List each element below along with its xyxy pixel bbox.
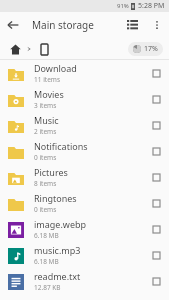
- button[interactable]: readme.txt: [0, 268, 169, 294]
- staticText: music.mp3: [34, 244, 81, 256]
- staticText: Ringtones: [34, 192, 77, 204]
- staticText: 2 items: [34, 127, 57, 136]
- staticText: 5:28 PM: [138, 1, 165, 11]
- button[interactable]: Pictures: [0, 164, 169, 190]
- button[interactable]: Back: [0, 12, 26, 38]
- button[interactable]: Select Music: [143, 112, 169, 138]
- staticText: Download: [34, 62, 77, 74]
- staticText: image.webp: [34, 218, 87, 230]
- button[interactable]: Home: [6, 40, 24, 58]
- staticText: 3 items: [34, 101, 57, 110]
- staticText: Main storage: [32, 18, 94, 32]
- button[interactable]: Select readme.txt: [143, 268, 169, 294]
- button[interactable]: music.mp3: [0, 242, 169, 268]
- button[interactable]: Notifications: [0, 138, 169, 164]
- staticText: 0 items: [34, 153, 57, 162]
- button[interactable]: Download: [0, 60, 169, 86]
- button[interactable]: Select music.mp3: [143, 242, 169, 268]
- button[interactable]: Main storage: [35, 40, 53, 58]
- staticText: Pictures: [34, 166, 68, 178]
- button[interactable]: Select image.webp: [143, 216, 169, 242]
- staticText: 0 items: [34, 205, 57, 214]
- button[interactable]: Select Ringtones: [143, 190, 169, 216]
- button[interactable]: image.webp: [0, 216, 169, 242]
- staticText: Music: [34, 114, 59, 126]
- button[interactable]: 17%: [128, 42, 163, 56]
- staticText: 12.87 KB: [34, 283, 61, 292]
- button[interactable]: Select Download: [143, 60, 169, 86]
- button[interactable]: More options: [145, 13, 169, 37]
- staticText: 17%: [144, 44, 158, 54]
- button[interactable]: Music: [0, 112, 169, 138]
- staticText: readme.txt: [34, 270, 81, 282]
- button[interactable]: Select Notifications: [143, 138, 169, 164]
- staticText: 8 items: [34, 179, 57, 188]
- staticText: 6.18 MB: [34, 257, 59, 266]
- staticText: Notifications: [34, 140, 88, 152]
- staticText: 91%: [117, 2, 129, 10]
- button[interactable]: Ringtones: [0, 190, 169, 216]
- button[interactable]: Select Movies: [143, 86, 169, 112]
- staticText: 11 items: [34, 75, 61, 84]
- button[interactable]: Movies: [0, 86, 169, 112]
- staticText: 6.18 MB: [34, 231, 59, 240]
- button[interactable]: View mode: [119, 12, 145, 38]
- button[interactable]: Select Pictures: [143, 164, 169, 190]
- staticText: Movies: [34, 88, 64, 100]
